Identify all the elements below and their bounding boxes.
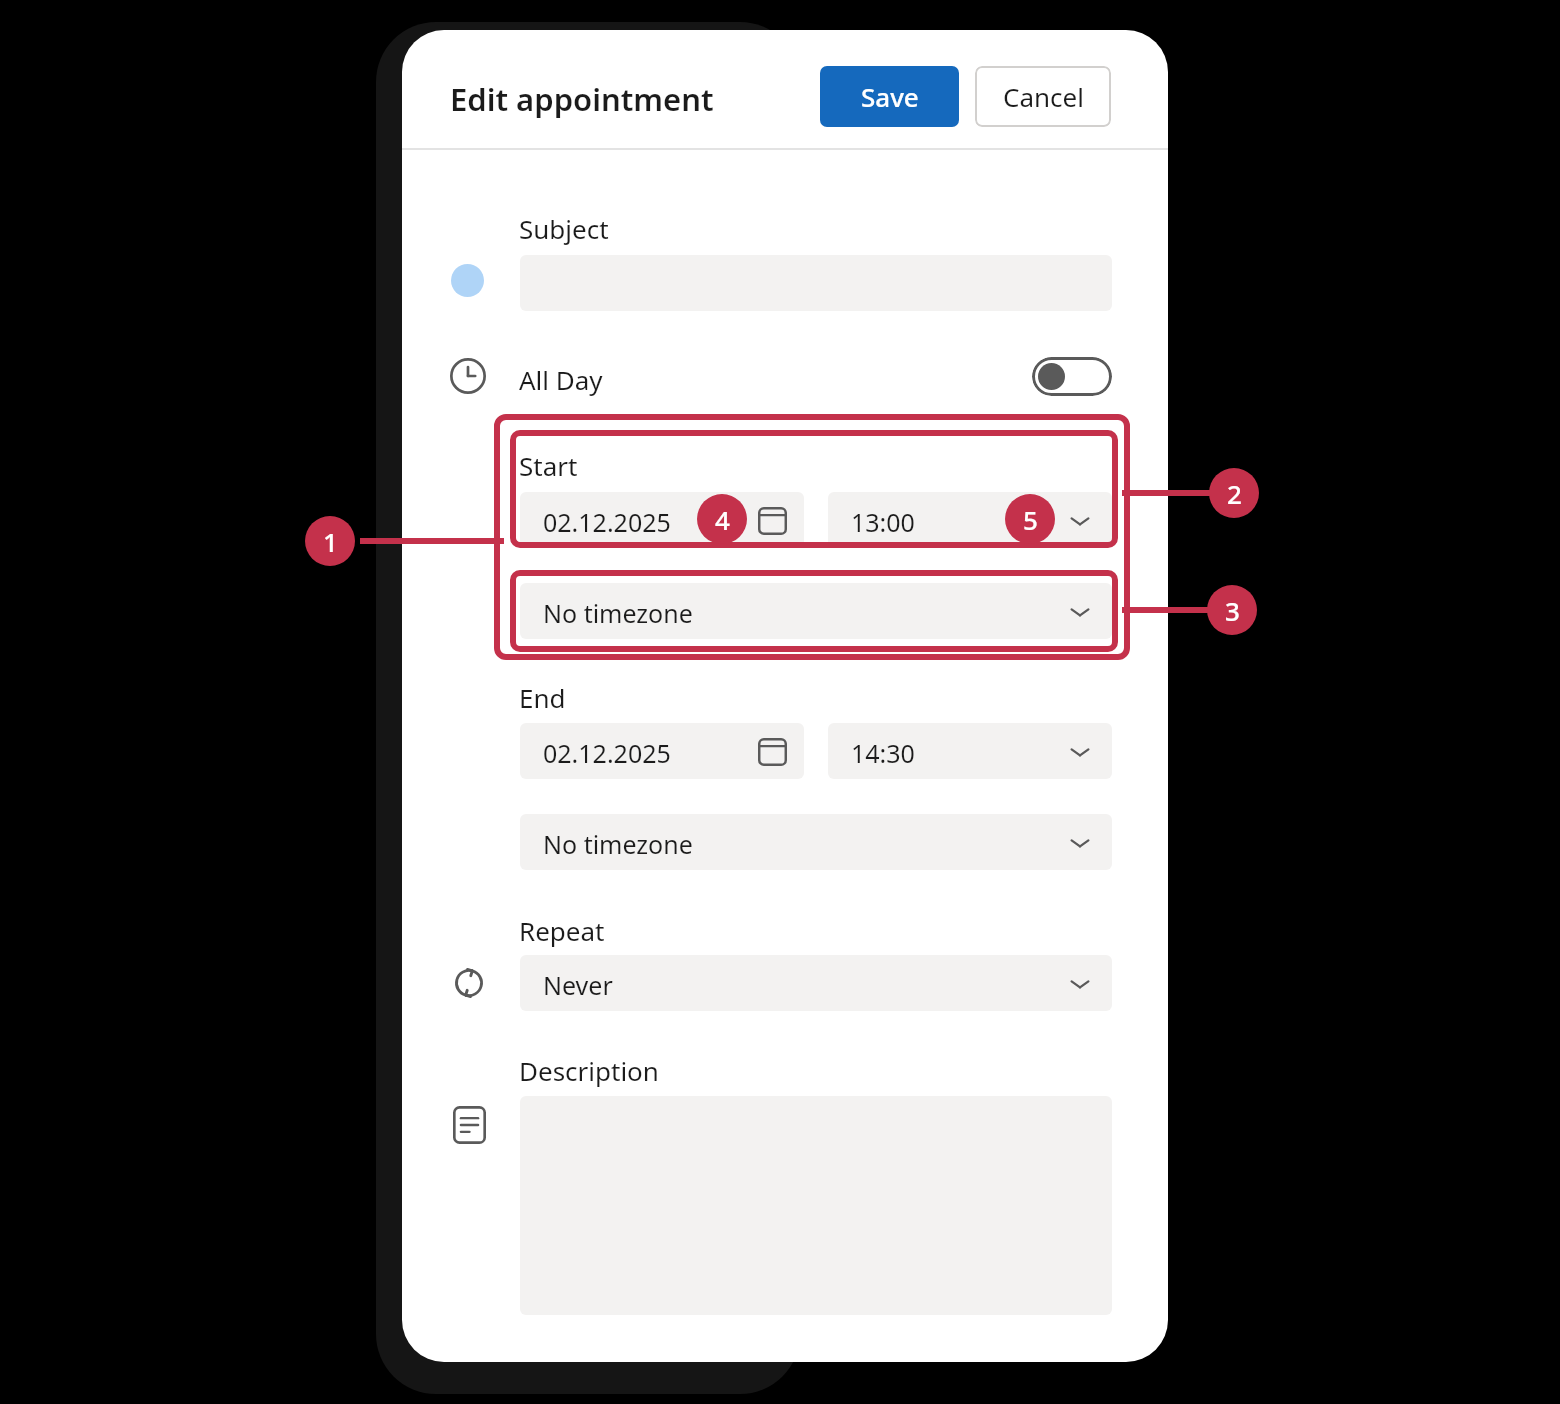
- button[interactable]: 02.12.2025: [520, 492, 804, 548]
- staticText: No timezone: [543, 596, 693, 630]
- staticText: All Day: [519, 362, 603, 397]
- staticText: 14:30: [851, 736, 915, 770]
- staticText: Cancel: [1003, 79, 1084, 114]
- staticText: 4: [715, 502, 730, 537]
- staticText: Start: [519, 448, 578, 483]
- button[interactable]: No timezone: [520, 583, 1112, 639]
- staticText: 02.12.2025: [543, 736, 671, 770]
- button[interactable]: 02.12.2025: [520, 723, 804, 779]
- staticText: Edit appointment: [450, 78, 714, 120]
- staticText: 3: [1225, 593, 1240, 628]
- other: Repeat: [450, 963, 488, 1003]
- other: Description: [453, 1106, 486, 1144]
- staticText: Description: [519, 1053, 659, 1088]
- button[interactable]: Cancel: [975, 66, 1111, 127]
- staticText: 1: [323, 524, 338, 559]
- staticText: Repeat: [519, 913, 605, 948]
- staticText: Subject: [519, 211, 609, 246]
- staticText: No timezone: [543, 827, 693, 861]
- button[interactable]: No timezone: [520, 814, 1112, 870]
- staticText: 02.12.2025: [543, 505, 671, 539]
- staticText: 5: [1023, 502, 1038, 537]
- button[interactable]: 13:00: [828, 492, 1112, 548]
- other: Time: [450, 358, 486, 394]
- staticText: Never: [543, 968, 613, 1002]
- button[interactable]: Save: [820, 66, 959, 127]
- staticText: End: [519, 680, 566, 715]
- staticText: Save: [861, 79, 919, 114]
- staticText: 2: [1227, 476, 1242, 511]
- staticText: 13:00: [851, 505, 915, 539]
- button[interactable]: 14:30: [828, 723, 1112, 779]
- button[interactable]: All Day toggle: [1032, 357, 1112, 396]
- button[interactable]: Never: [520, 955, 1112, 1011]
